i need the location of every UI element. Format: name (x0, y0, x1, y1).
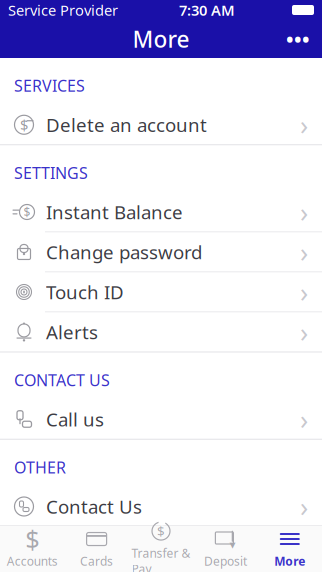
button[interactable]: Alerts (0, 312, 322, 351)
staticText: Touch ID (46, 280, 124, 304)
staticText: › (300, 274, 308, 310)
staticText: › (300, 529, 308, 564)
button[interactable]: $ (0, 526, 64, 572)
staticText: Accounts (7, 553, 58, 569)
button[interactable]: Branch Hours and ATM locations (0, 527, 322, 566)
staticText: Change password (46, 240, 202, 264)
button[interactable]: $ (0, 105, 322, 144)
staticText: Cards (80, 553, 113, 569)
staticText: ▾ (229, 538, 235, 551)
staticText: SETTINGS (14, 162, 88, 183)
staticText: Call us (46, 407, 104, 432)
staticText: Delete an account (46, 112, 207, 137)
staticText: Deposit (204, 553, 247, 569)
staticText: Instant Balance (46, 200, 183, 224)
button[interactable]: $ (0, 192, 322, 231)
staticText: › (300, 401, 308, 437)
button[interactable]: More options (274, 16, 322, 62)
staticText: Alerts (46, 320, 98, 344)
button[interactable]: Cards (64, 526, 129, 572)
staticText: $ (20, 115, 28, 134)
staticText: $ (157, 522, 165, 540)
button[interactable]: Touch ID (0, 272, 322, 311)
button[interactable]: $ (129, 526, 193, 572)
staticText: SERVICES (14, 75, 85, 96)
staticText: Branch Hours and ATM locations (46, 522, 248, 571)
staticText: More (132, 24, 189, 54)
staticText: › (300, 194, 308, 230)
staticText: $ (25, 522, 39, 556)
staticText: › (300, 314, 308, 350)
staticText: › (300, 234, 308, 270)
button[interactable]: Change password (0, 232, 322, 271)
staticText: ••• (286, 26, 310, 52)
staticText: More (274, 553, 305, 569)
staticText: OTHER (14, 457, 66, 478)
staticText: CONTACT US (14, 369, 110, 391)
button[interactable]: Contact Us (0, 487, 322, 526)
staticText: 7:30 AM (179, 0, 235, 20)
staticText: $ (23, 204, 30, 220)
button[interactable]: Call us (0, 400, 322, 439)
staticText: › (300, 107, 308, 142)
button[interactable]: More (258, 526, 322, 572)
button[interactable]: ▾ (193, 526, 258, 572)
staticText: › (300, 489, 308, 524)
staticText: Transfer & Pay (131, 545, 190, 572)
staticText: Contact Us (46, 494, 142, 519)
staticText: Service Provider (8, 0, 118, 20)
